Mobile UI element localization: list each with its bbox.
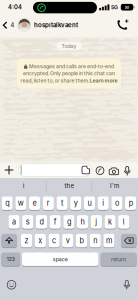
button[interactable]: k [104,215,116,229]
button[interactable]: Dictate [123,280,130,290]
button[interactable]: Call [116,18,129,31]
staticText: 5G [111,4,118,10]
button[interactable]: Messages and calls are end-to-end [17,58,121,88]
button[interactable]: Camera [109,167,119,175]
staticText: u [87,199,91,208]
button[interactable]: m [103,234,114,247]
button[interactable]: x [35,234,46,247]
staticText: g [67,217,71,226]
staticText: I'm [110,182,119,189]
button[interactable]: q [1,196,13,210]
staticText: e [33,199,37,208]
staticText: 4:04 [8,4,22,11]
button[interactable]: e [29,196,40,210]
button[interactable]: c [48,234,60,247]
button[interactable]: p [125,196,136,210]
staticText: x [38,236,42,245]
button[interactable]: Record voice message [124,166,131,176]
staticText: z [25,236,29,245]
staticText: q [5,199,9,208]
button[interactable]: Shift [2,234,17,247]
button[interactable]: I'm [92,179,136,193]
button[interactable]: v [62,234,73,247]
button[interactable] [18,163,91,176]
staticText: b [79,236,83,245]
button[interactable]: l [118,215,129,229]
button[interactable]: u [84,196,95,210]
staticText: f [54,217,57,226]
button[interactable]: Emoji [7,280,16,290]
button[interactable]: Photos [95,166,104,175]
staticText: Today [61,43,76,49]
button[interactable]: hospitalkvaent [17,17,83,32]
staticText: read, listen to, or share them. [20,77,89,84]
staticText: n [93,236,97,245]
button[interactable]: b [76,234,87,247]
button[interactable]: r [43,196,54,210]
button[interactable]: space [22,252,98,266]
staticText: i [102,199,104,208]
staticText: y [74,199,78,208]
button[interactable]: return [101,252,136,266]
staticText: o [115,199,119,208]
button[interactable]: j [91,215,102,229]
staticText: m [106,236,112,245]
staticText: k [108,217,112,226]
staticText: d [39,217,43,226]
staticText: Learn more [89,77,117,84]
button[interactable]: n [90,234,101,247]
button[interactable]: Numbers [1,252,20,266]
button[interactable]: h [77,215,88,229]
button[interactable]: i [1,179,45,193]
button[interactable]: Attach [4,165,14,175]
button[interactable]: w [15,196,26,210]
staticText: r [47,199,50,208]
staticText: i [23,182,24,189]
staticText: t [61,199,63,208]
button[interactable]: t [56,196,68,210]
button[interactable]: y [70,196,81,210]
button[interactable]: z [21,234,32,247]
button[interactable]: a [8,215,20,229]
staticText: p [129,199,133,208]
button[interactable]: s [22,215,33,229]
staticText: encrypted. Only people in this chat can [23,70,115,77]
staticText: the [64,182,73,189]
staticText: return [111,256,126,262]
staticText: s [26,217,30,226]
button[interactable]: o [111,196,122,210]
staticText: Messages and calls are end-to-end [29,63,114,69]
staticText: c [52,236,56,245]
staticText: hospitalkvaent [34,21,78,29]
button[interactable]: the [47,179,91,193]
button[interactable]: g [63,215,74,229]
button[interactable]: f [50,215,61,229]
staticText: h [81,217,85,226]
staticText: v [66,236,70,245]
button[interactable]: i [98,196,109,210]
button[interactable]: Back [1,19,15,31]
staticText: 123 [7,256,15,262]
button[interactable]: Delete [121,234,136,247]
staticText: l [123,217,125,226]
staticText: j [95,217,97,226]
button[interactable]: Stickers [81,166,90,174]
staticText: space [53,256,68,262]
button[interactable]: d [36,215,47,229]
staticText: 50 [124,5,129,10]
staticText: 4 [10,22,14,29]
staticText: a [12,217,16,226]
staticText: w [18,199,24,208]
